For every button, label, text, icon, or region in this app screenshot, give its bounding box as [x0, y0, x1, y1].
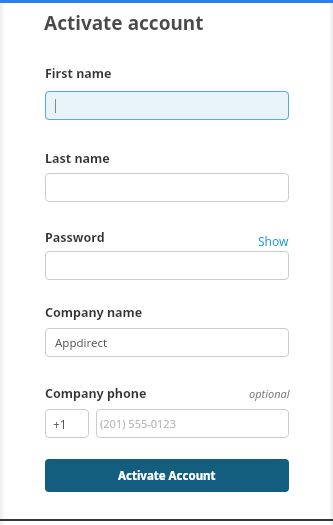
staticText: Activate Account [118, 468, 216, 484]
staticText: (201) 555-0123 [100, 416, 176, 431]
staticText: Company phone [45, 385, 147, 402]
button[interactable]: (201) 555-0123 [96, 409, 289, 438]
staticText: optional [249, 386, 290, 401]
staticText: Activate account [44, 10, 204, 36]
button[interactable] [45, 91, 289, 120]
button[interactable]: +1 [45, 409, 89, 438]
staticText: First name [45, 65, 112, 82]
staticText: Company name [45, 304, 143, 321]
button[interactable]: Appdirect [45, 328, 289, 357]
staticText: Last name [45, 150, 110, 167]
button[interactable] [45, 173, 289, 202]
button[interactable]: Show [258, 233, 289, 249]
button[interactable] [45, 251, 289, 280]
staticText: Password [45, 229, 105, 246]
staticText: +1 [53, 416, 67, 432]
staticText: Appdirect [55, 335, 108, 351]
button[interactable]: Activate Account [45, 459, 289, 492]
